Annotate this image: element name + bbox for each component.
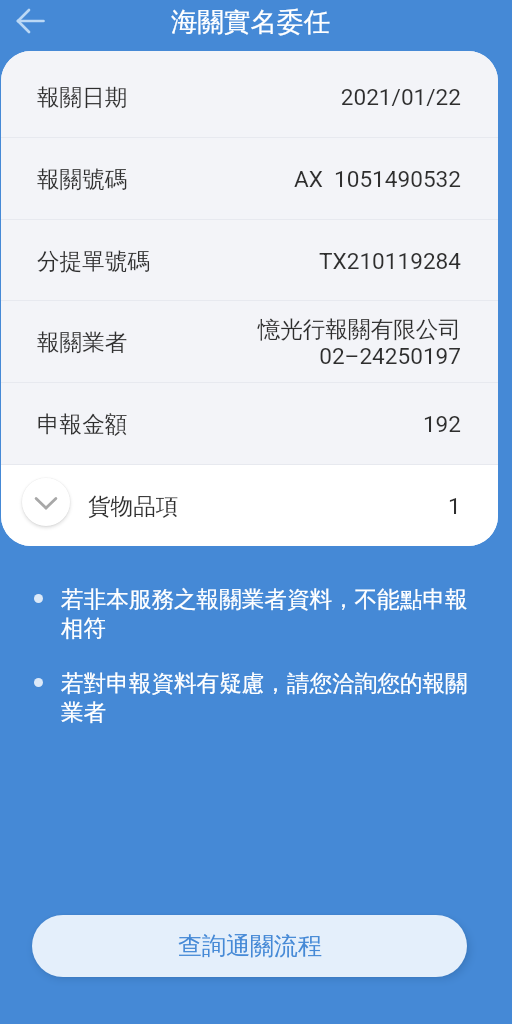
staticText: 貨物品項 — [88, 492, 179, 520]
button[interactable]: 查詢通關流程 — [32, 915, 467, 977]
staticText: 申報金額 — [37, 410, 128, 438]
other: Expand items — [22, 478, 70, 526]
staticText: 02–24250197 — [319, 343, 461, 369]
button[interactable]: Back — [7, 0, 55, 45]
button[interactable]: 申報金額 — [1, 383, 498, 465]
staticText: 憶光行報關有限公司 — [257, 315, 461, 343]
button[interactable]: 報關日期 — [1, 56, 498, 138]
staticText: 1 — [448, 493, 461, 519]
staticText: 報關業者 — [37, 328, 128, 356]
staticText: 192 — [422, 411, 461, 437]
button[interactable]: Expand items — [1, 465, 498, 546]
staticText: 海關實名委任 — [171, 5, 330, 38]
staticText: 分提單號碼 — [37, 247, 150, 275]
staticText: 2021/01/22 — [340, 84, 461, 110]
staticText: TX210119284 — [319, 248, 461, 274]
button[interactable]: 報關業者 — [1, 301, 498, 383]
staticText: 若非本服務之報關業者資料，不能點申報相符 — [61, 585, 481, 643]
staticText: AX 1051490532 — [293, 166, 461, 192]
staticText: 查詢通關流程 — [178, 931, 322, 961]
staticText: 若對申報資料有疑慮，請您洽詢您的報關業者 — [61, 669, 481, 727]
staticText: 報關號碼 — [37, 165, 128, 193]
button[interactable]: 分提單號碼 — [1, 220, 498, 301]
staticText: 報關日期 — [37, 83, 128, 111]
button[interactable]: 報關號碼 — [1, 138, 498, 220]
